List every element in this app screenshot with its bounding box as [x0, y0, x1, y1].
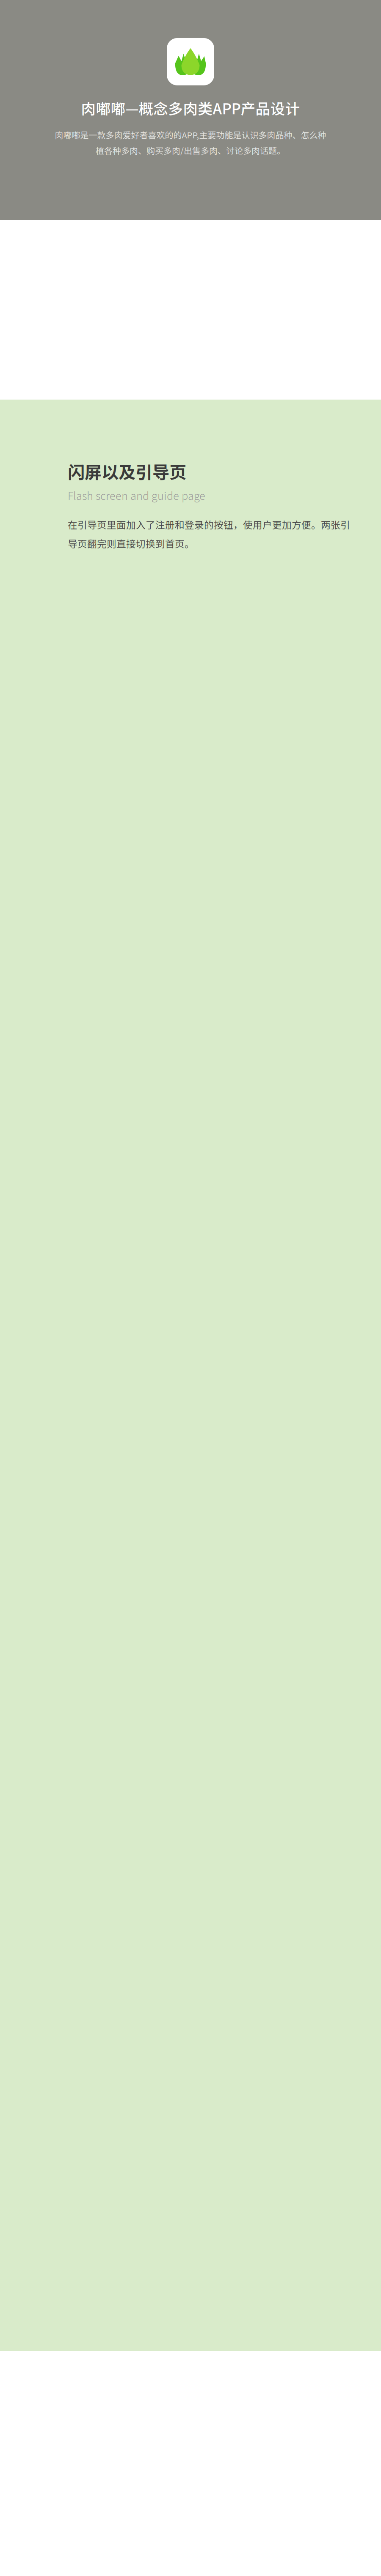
staticText: 肉嘟嘟—概念多肉类APP产品设计: [81, 97, 300, 118]
staticText: Flash screen and guide page: [68, 488, 205, 503]
staticText: 肉嘟嘟是一款多肉爱好者喜欢的的APP,主要功能是认识多肉品种、怎么种: [55, 129, 326, 141]
staticText: 在引导页里面加入了注册和登录的按钮，使用户更加方便。两张引: [68, 517, 350, 531]
staticText: 植各种多肉、购买多肉/出售多肉、讨论多肉话题。: [96, 144, 285, 156]
staticText: 导页翻完则直接切换到首页。: [68, 536, 194, 550]
staticText: 闪屏以及引导页: [68, 459, 186, 483]
